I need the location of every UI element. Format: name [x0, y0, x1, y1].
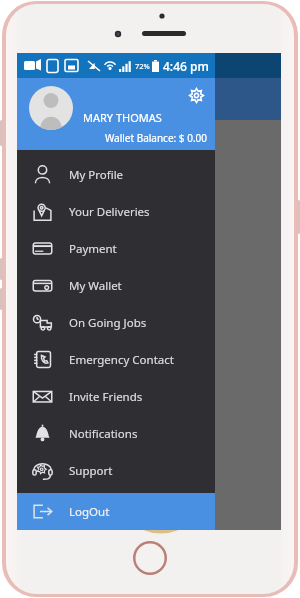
staticText: Support	[69, 463, 113, 479]
staticText: MARY THOMAS	[83, 110, 162, 125]
button[interactable]: MARY THOMAS	[17, 78, 215, 150]
staticText: Invite Friends	[69, 389, 143, 405]
staticText: on to any single	[31, 143, 113, 158]
staticText: On Going Jobs	[69, 315, 147, 331]
button[interactable]: Your Deliveries	[17, 193, 215, 230]
staticText: Notifications	[69, 426, 138, 442]
staticText: Your Deliveries	[69, 204, 150, 220]
button[interactable]: Support	[17, 452, 215, 489]
staticText: Wallet Balance: $ 0.00	[104, 131, 207, 145]
button[interactable]: Notifications	[17, 415, 215, 452]
button[interactable]: My Profile	[17, 156, 215, 193]
staticText: bike or car? Click	[31, 317, 110, 331]
staticText: Payment	[69, 241, 117, 257]
staticText: Emergency Contact	[69, 352, 174, 368]
button[interactable]: LogOut	[17, 493, 215, 530]
button[interactable]: Invite Friends	[17, 378, 215, 415]
button[interactable]: Settings	[185, 84, 207, 106]
staticText: pick up point to	[31, 128, 112, 143]
staticText: 72%	[135, 61, 150, 71]
staticText: LogOut	[69, 504, 110, 520]
staticText: 4:46 pm	[163, 58, 209, 74]
staticText: tions in a single	[31, 385, 105, 399]
staticText: My Wallet	[69, 278, 122, 294]
staticText: SEND	[31, 282, 63, 298]
staticText: deliveries to	[31, 399, 89, 413]
staticText: small item that	[31, 303, 102, 317]
button[interactable]: My Wallet	[17, 267, 215, 304]
staticText: My Profile	[69, 167, 124, 183]
button[interactable]: Emergency Contact	[17, 341, 215, 378]
button[interactable]: On Going Jobs	[17, 304, 215, 341]
staticText: gle location!	[31, 345, 89, 359]
button[interactable]: Payment	[17, 230, 215, 267]
